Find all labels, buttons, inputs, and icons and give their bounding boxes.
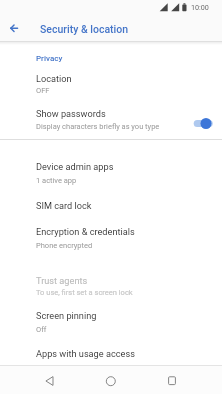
staticText: Off [36,325,47,334]
button[interactable] [0,154,222,190]
staticText: Show passwords [36,108,106,119]
button[interactable] [100,371,120,391]
staticText: To use, first set a screen lock [36,288,133,297]
staticText: Privacy [36,54,63,63]
staticText: SIM card lock [36,200,92,211]
button[interactable] [39,371,59,391]
button[interactable] [0,218,222,256]
staticText: Location [36,73,72,84]
button[interactable] [0,340,222,364]
staticText: Display characters briefly as you type [36,122,160,131]
button[interactable] [6,20,23,37]
staticText: Encryption & credentials [36,226,135,237]
staticText: 10:00 [191,3,209,11]
staticText: Phone encrypted [36,241,93,250]
staticText: OFF [36,86,50,95]
button[interactable] [162,371,182,391]
staticText: Trust agents [36,275,88,286]
button[interactable] [0,302,222,340]
button[interactable] [0,266,222,302]
staticText: Security & location [40,23,129,35]
button[interactable] [0,100,222,138]
staticText: Device admin apps [36,161,114,172]
button[interactable] [0,190,222,218]
staticText: Screen pinning [36,310,97,321]
staticText: 1 active app [36,176,77,185]
button[interactable] [189,112,215,134]
staticText: Apps with usage access [36,348,135,359]
button[interactable] [0,66,222,100]
